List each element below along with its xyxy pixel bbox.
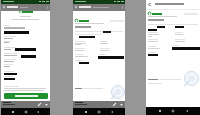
button[interactable]: Edit: [112, 102, 117, 107]
button[interactable]: Back: [36, 110, 40, 114]
button[interactable]: More options: [46, 6, 49, 9]
button[interactable]: Edit: [37, 102, 42, 107]
button[interactable]: Home: [24, 110, 28, 114]
button[interactable]: Back: [147, 2, 152, 7]
button[interactable]: Recents: [11, 110, 15, 114]
button[interactable]: Hide keyboard: [119, 102, 124, 107]
button[interactable]: [4, 93, 48, 99]
button[interactable]: Back: [2, 5, 6, 9]
button[interactable]: Recents: [158, 109, 162, 113]
button[interactable]: Back: [74, 5, 78, 9]
button[interactable]: Home: [97, 110, 101, 114]
button[interactable]: Recents: [84, 110, 88, 114]
button[interactable]: Hide keyboard: [44, 102, 49, 107]
button[interactable]: Home: [171, 109, 175, 113]
button[interactable]: More options: [121, 6, 124, 9]
button[interactable]: Back: [185, 109, 189, 113]
button[interactable]: Back: [110, 110, 114, 114]
